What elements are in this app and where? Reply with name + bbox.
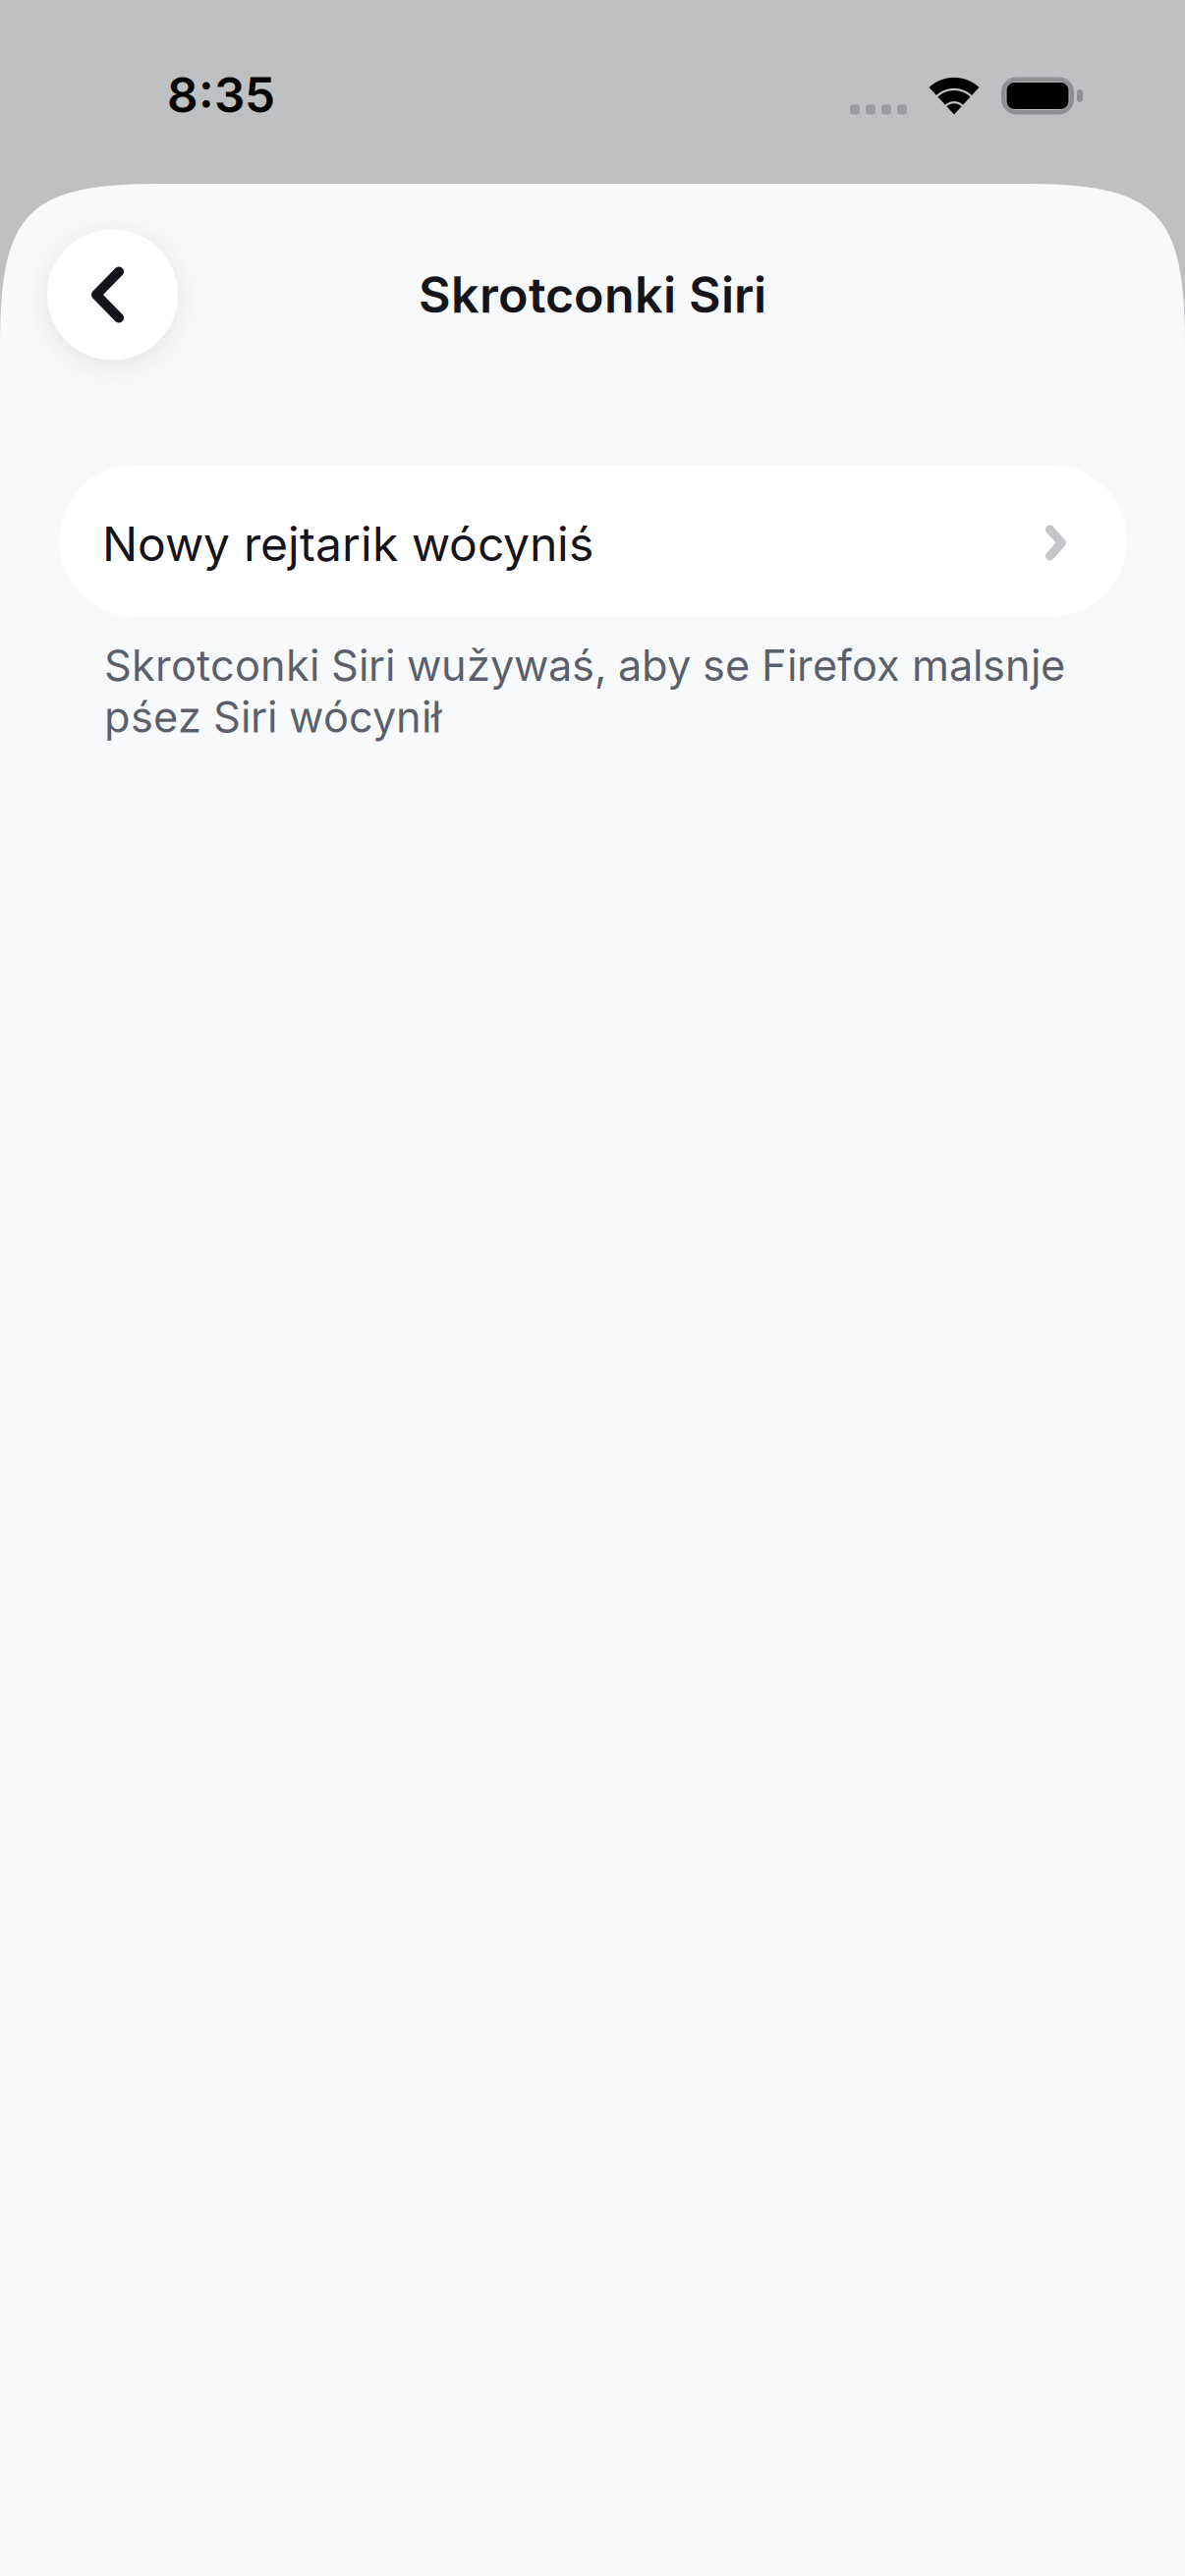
button[interactable]: Back: [47, 229, 178, 360]
staticText: 8:35: [167, 66, 275, 124]
staticText: Nowy rejtarik wócyniś: [102, 515, 593, 572]
staticText: Skrotconki Siri: [419, 265, 766, 325]
staticText: Skrotconki Siri wužywaś, aby se Firefox …: [104, 640, 1065, 743]
button[interactable]: Nowy rejtarik wócyniś: [59, 465, 1127, 617]
